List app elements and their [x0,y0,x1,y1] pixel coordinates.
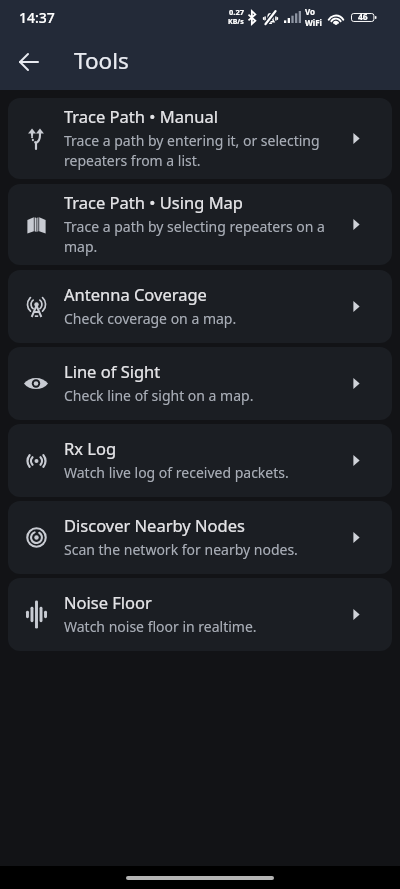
button[interactable]: Back [5,38,53,86]
staticText: Trace a path by entering it, or selectin… [64,131,326,170]
staticText: Tools [74,45,129,76]
staticText: Discover Nearby Nodes [64,514,245,536]
button[interactable]: Noise Floor [8,578,392,651]
staticText: WiFi [305,17,322,28]
staticText: Trace Path • Manual [64,105,218,127]
staticText: Noise Floor [64,591,152,613]
staticText: Vo [305,6,316,17]
staticText: 0.27 [229,7,244,17]
button[interactable]: Discover Nearby Nodes [8,501,392,574]
staticText: Line of Sight [64,360,161,382]
button[interactable]: Rx Log [8,424,392,497]
staticText: 46 [358,11,368,23]
staticText: Check line of sight on a map. [64,386,254,405]
staticText: Watch live log of received packets. [64,463,289,482]
button[interactable]: Antenna Coverage [8,270,392,343]
staticText: Trace Path • Using Map [64,191,244,213]
staticText: 14:37 [19,8,55,27]
button[interactable]: Trace Path • Manual [8,98,392,179]
staticText: Trace a path by selecting repeaters on a… [64,217,326,256]
button[interactable]: Trace Path • Using Map [8,184,392,265]
staticText: KB/s [228,17,244,27]
staticText: Scan the network for nearby nodes. [64,540,298,559]
staticText: Watch noise floor in realtime. [64,617,257,636]
button[interactable]: Line of Sight [8,347,392,420]
staticText: Check coverage on a map. [64,309,237,328]
staticText: Antenna Coverage [64,283,207,305]
staticText: Rx Log [64,437,117,459]
